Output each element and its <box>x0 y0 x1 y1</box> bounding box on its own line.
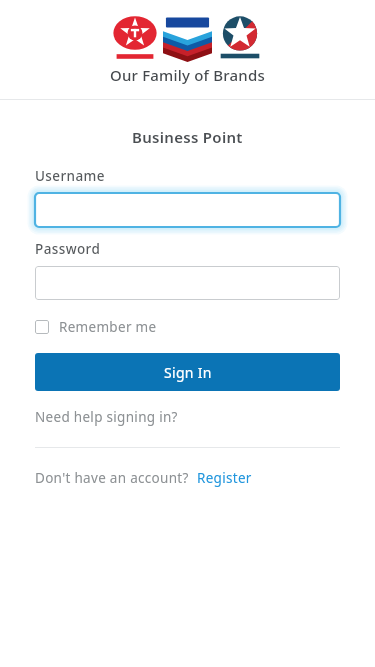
other: Texaco <box>112 16 158 62</box>
button[interactable]: Sign In <box>35 353 340 391</box>
button[interactable]: Remember me <box>35 316 157 338</box>
button[interactable] <box>35 193 340 227</box>
button[interactable]: Need help signing in? <box>35 406 178 428</box>
staticText: Username <box>35 167 105 185</box>
staticText: Don't have an account? <box>35 469 189 487</box>
staticText: Need help signing in? <box>35 408 178 426</box>
staticText: Remember me <box>59 318 157 336</box>
button[interactable] <box>35 266 340 300</box>
other: Caltex <box>217 16 263 62</box>
staticText: Register <box>197 469 252 487</box>
staticText: Business Point <box>132 127 243 147</box>
other: Chevron <box>163 16 212 62</box>
staticText: Sign In <box>164 363 212 382</box>
staticText: Our Family of Brands <box>110 65 265 85</box>
staticText: Password <box>35 240 101 258</box>
button[interactable]: Register <box>197 467 252 489</box>
